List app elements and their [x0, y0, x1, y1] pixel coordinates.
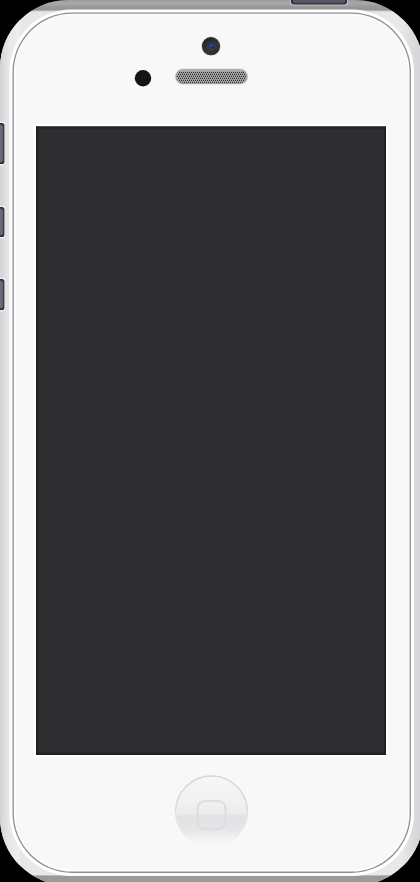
button[interactable]: Volume up	[0, 207, 6, 237]
button[interactable]: Volume down	[0, 279, 6, 310]
button[interactable]: Silent switch	[0, 123, 6, 164]
button[interactable]: Home	[175, 776, 247, 848]
button[interactable]: Power	[291, 0, 347, 6]
